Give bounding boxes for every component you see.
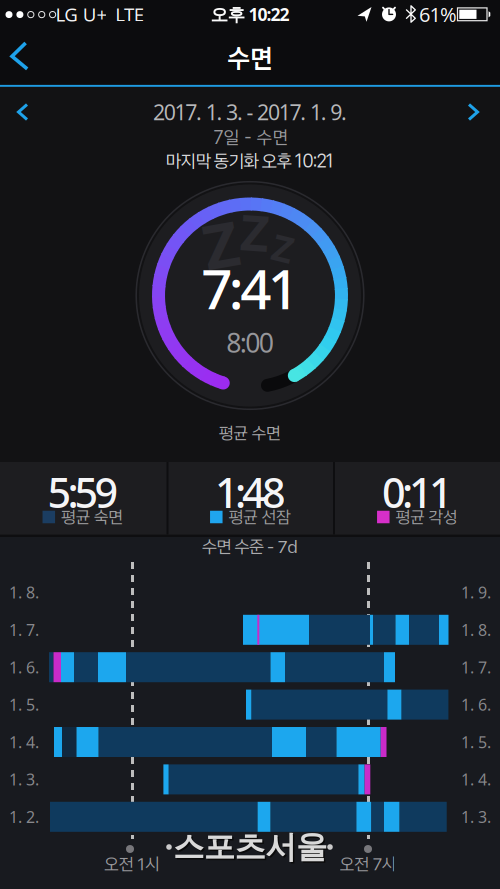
staticText: 1. 5. — [9, 694, 39, 715]
staticText: 평균 수면 — [219, 423, 281, 443]
staticText: 8:00 — [226, 325, 274, 360]
staticText: 1. 7. — [9, 619, 39, 640]
staticText: LTE — [115, 2, 144, 27]
staticText: 스포츠서울 — [175, 829, 328, 868]
staticText: 평균 숙면 — [61, 507, 123, 527]
staticText: 2017. 1. 3. - 2017. 1. 9. — [153, 98, 347, 126]
staticText: 7일 - 수면 — [214, 126, 288, 148]
button[interactable]: Next week — [451, 90, 495, 134]
staticText: 7:41 — [201, 252, 299, 324]
staticText: 1. 7. — [461, 657, 491, 678]
staticText: 1:48 — [215, 465, 286, 519]
staticText: 1. 6. — [9, 657, 39, 678]
staticText: 5:59 — [47, 465, 118, 519]
staticText: 1. 8. — [9, 582, 39, 603]
staticText: 수면 — [227, 39, 273, 75]
staticText: 1. 3. — [461, 806, 491, 827]
staticText: 0:11 — [382, 465, 453, 519]
staticText: 스포츠서울 — [173, 827, 327, 867]
staticText: 오후 10:22 — [210, 2, 289, 26]
staticText: 1. 3. — [9, 769, 39, 790]
staticText: 1. 4. — [461, 769, 491, 790]
staticText: 오전 1시 — [104, 854, 160, 874]
staticText: 1. 9. — [461, 582, 491, 603]
staticText: 1. 8. — [461, 619, 491, 640]
staticText: Z — [240, 199, 269, 265]
staticText: 1. 5. — [461, 731, 491, 753]
staticText: 61% — [419, 1, 457, 27]
button[interactable]: Previous week — [0, 90, 44, 134]
staticText: LG U+ — [56, 2, 107, 27]
staticText: 수면 수준 - 7d — [202, 536, 298, 557]
staticText: 평균 선잠 — [229, 507, 291, 527]
staticText: 평균 각성 — [396, 507, 458, 527]
staticText: 1. 4. — [9, 731, 39, 753]
staticText: 마지막 동기화 오후 10:21 — [165, 150, 334, 172]
staticText: Z — [203, 203, 239, 285]
staticText: Z — [272, 224, 293, 272]
staticText: 1. 2. — [9, 806, 39, 827]
button[interactable]: Back — [0, 34, 42, 78]
staticText: 오전 7시 — [340, 854, 396, 874]
staticText: 1. 6. — [461, 694, 491, 715]
